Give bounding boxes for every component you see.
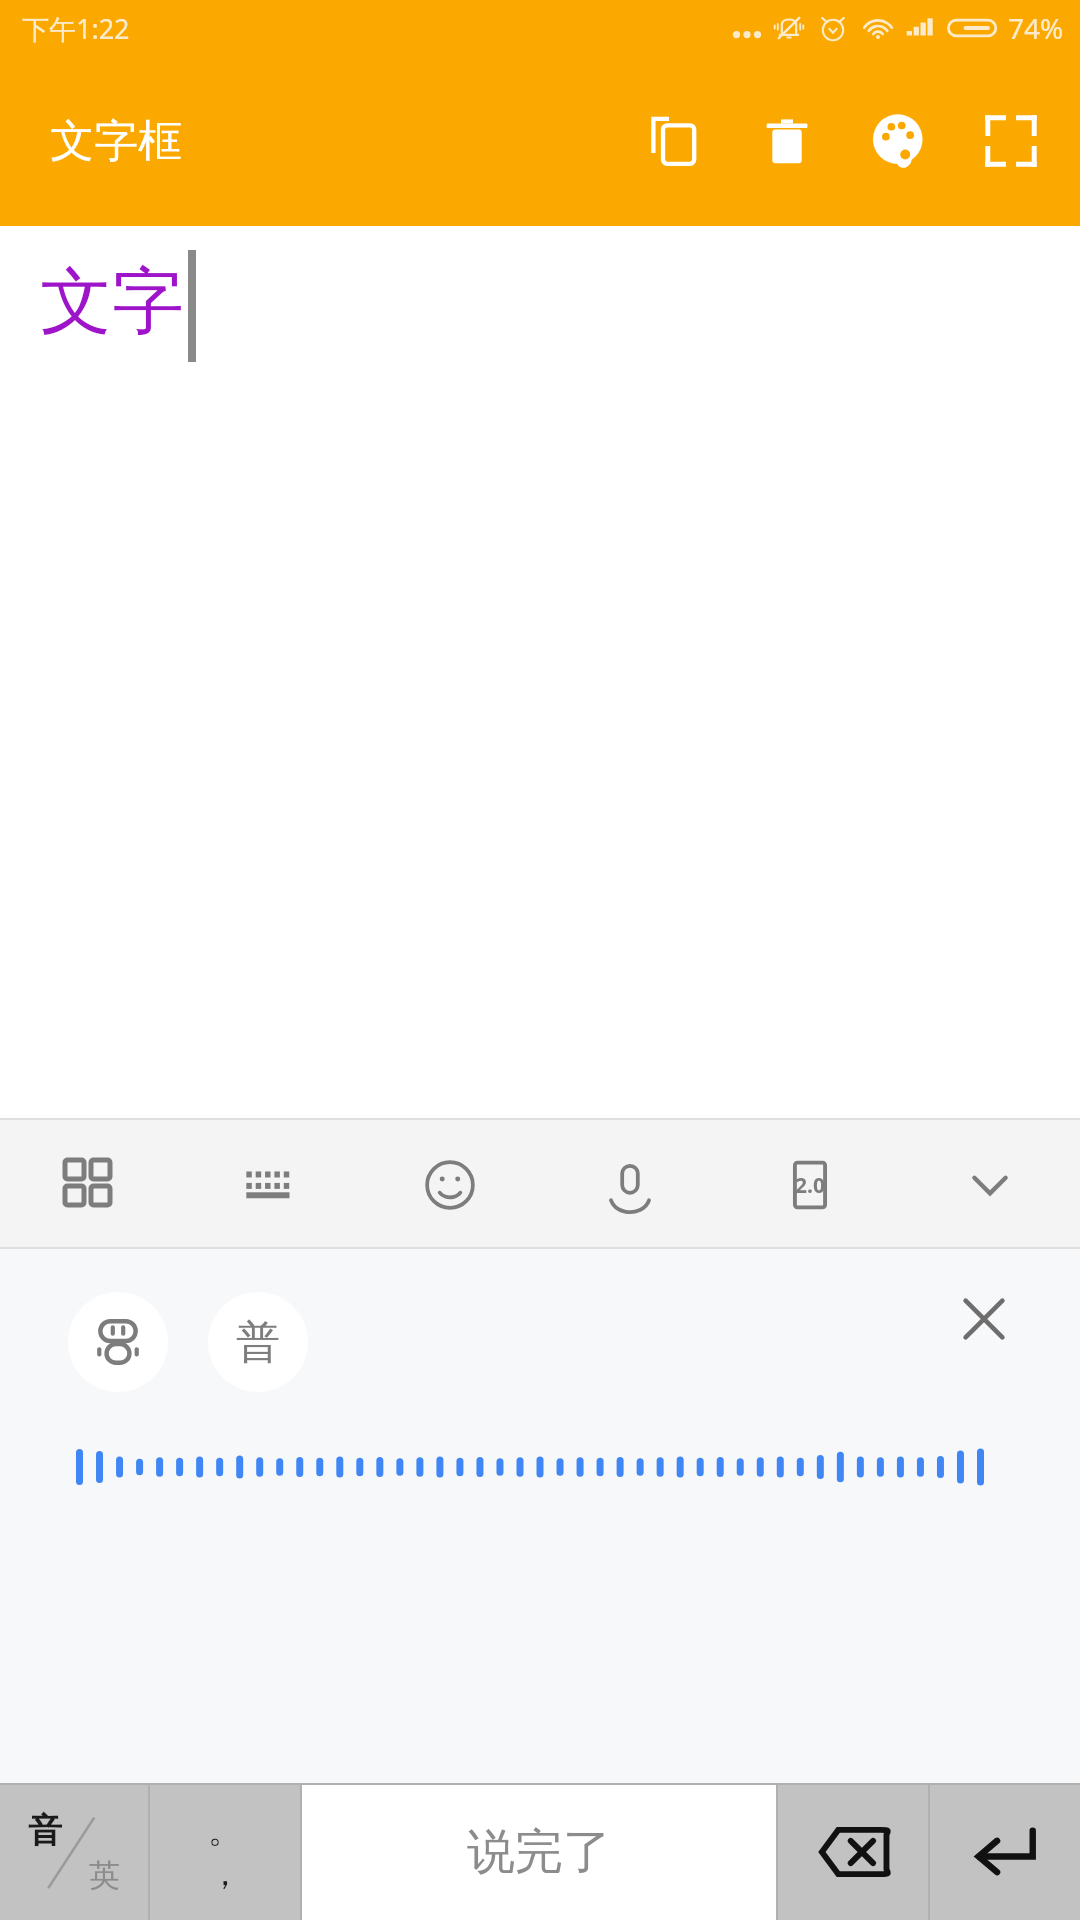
- staticText: 2.0: [795, 1171, 825, 1200]
- button[interactable]: Switch input language: [0, 1783, 148, 1920]
- button[interactable]: Speed 2.0: [720, 1120, 900, 1249]
- button[interactable]: Hide keyboard: [900, 1120, 1080, 1249]
- staticText: ，: [208, 1852, 242, 1895]
- button[interactable]: Punctuation: [150, 1783, 300, 1920]
- button[interactable]: Copy: [632, 98, 718, 184]
- staticText: 英: [89, 1856, 120, 1895]
- staticText: 。: [208, 1809, 242, 1852]
- staticText: 音: [28, 1809, 62, 1852]
- button[interactable]: Mandarin: [208, 1292, 308, 1392]
- button[interactable]: Emoji: [360, 1120, 540, 1249]
- staticText: 说完了: [467, 1822, 611, 1882]
- staticText: 74%: [1008, 9, 1064, 47]
- button[interactable]: Color palette: [856, 98, 942, 184]
- staticText: 下午1:22: [22, 10, 130, 47]
- staticText: 文字框: [50, 114, 182, 169]
- button[interactable]: Keyboard: [180, 1120, 360, 1249]
- button[interactable]: 文字: [0, 226, 1080, 1118]
- staticText: 文字: [40, 257, 184, 348]
- button[interactable]: Robot voice: [68, 1292, 168, 1392]
- button[interactable]: Delete: [744, 98, 830, 184]
- button[interactable]: Fullscreen: [968, 98, 1054, 184]
- button[interactable]: Backspace: [778, 1783, 928, 1920]
- button[interactable]: 说完了: [302, 1783, 776, 1920]
- button[interactable]: Enter: [930, 1783, 1080, 1920]
- staticText: 普: [236, 1315, 280, 1370]
- button[interactable]: Voice input: [540, 1120, 720, 1249]
- button[interactable]: Panels: [0, 1120, 180, 1249]
- button[interactable]: Close: [946, 1281, 1022, 1357]
